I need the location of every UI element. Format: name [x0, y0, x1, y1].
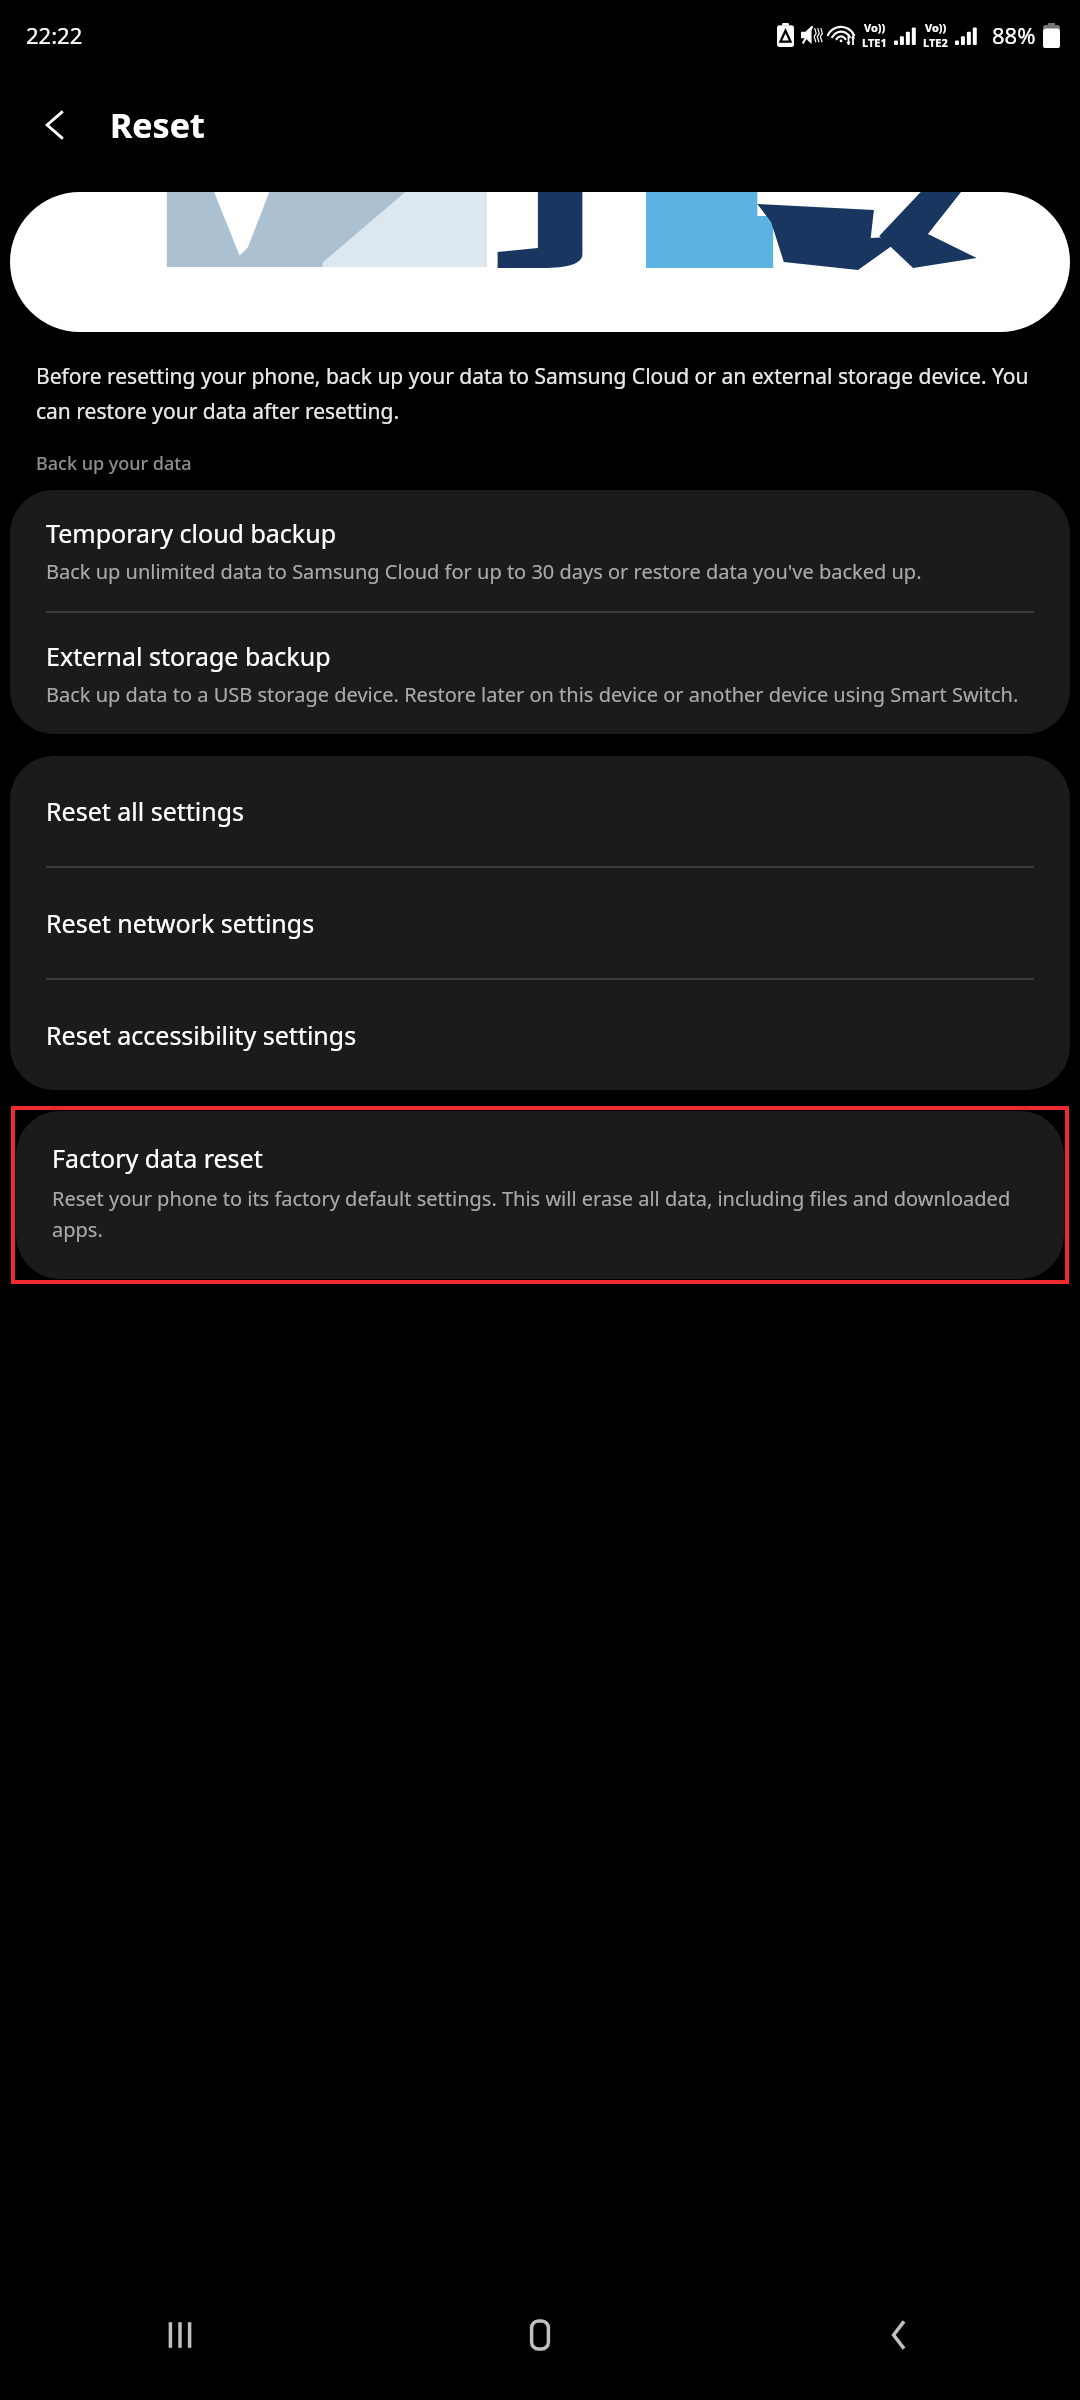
button[interactable]: Home	[360, 2270, 720, 2400]
staticText: LTE1	[862, 35, 887, 50]
button[interactable]: Reset network settings	[10, 868, 1070, 978]
staticText: 88%	[992, 20, 1036, 50]
staticText: Vo))	[925, 20, 947, 35]
staticText: External storage backup	[46, 639, 331, 673]
staticText: Reset	[110, 102, 205, 148]
staticText: Back up unlimited data to Samsung Cloud …	[46, 558, 922, 585]
staticText: Reset network settings	[46, 906, 315, 940]
staticText: Back up data to a USB storage device. Re…	[46, 681, 1019, 708]
staticText: Reset all settings	[46, 794, 245, 828]
button[interactable]: External storage backup	[10, 613, 1070, 734]
button[interactable]: Factory data reset	[16, 1111, 1064, 1279]
staticText: Factory data reset	[52, 1141, 263, 1175]
staticText: Back up your data	[36, 451, 192, 476]
button[interactable]: Back	[18, 87, 94, 163]
staticText: Reset your phone to its factory default …	[52, 1185, 1028, 1243]
staticText: LTE2	[923, 35, 948, 50]
button[interactable]: Reset all settings	[10, 756, 1070, 866]
staticText: Before resetting your phone, back up you…	[36, 362, 1044, 425]
staticText: Reset accessibility settings	[46, 1018, 357, 1052]
button[interactable]: Temporary cloud backup	[10, 490, 1070, 611]
staticText: 22:22	[26, 20, 83, 50]
staticText: Vo))	[864, 20, 886, 35]
button[interactable]: Back	[720, 2270, 1080, 2400]
button[interactable]: Recents	[0, 2270, 360, 2400]
staticText: Temporary cloud backup	[46, 516, 337, 550]
button[interactable]: Reset accessibility settings	[10, 980, 1070, 1090]
